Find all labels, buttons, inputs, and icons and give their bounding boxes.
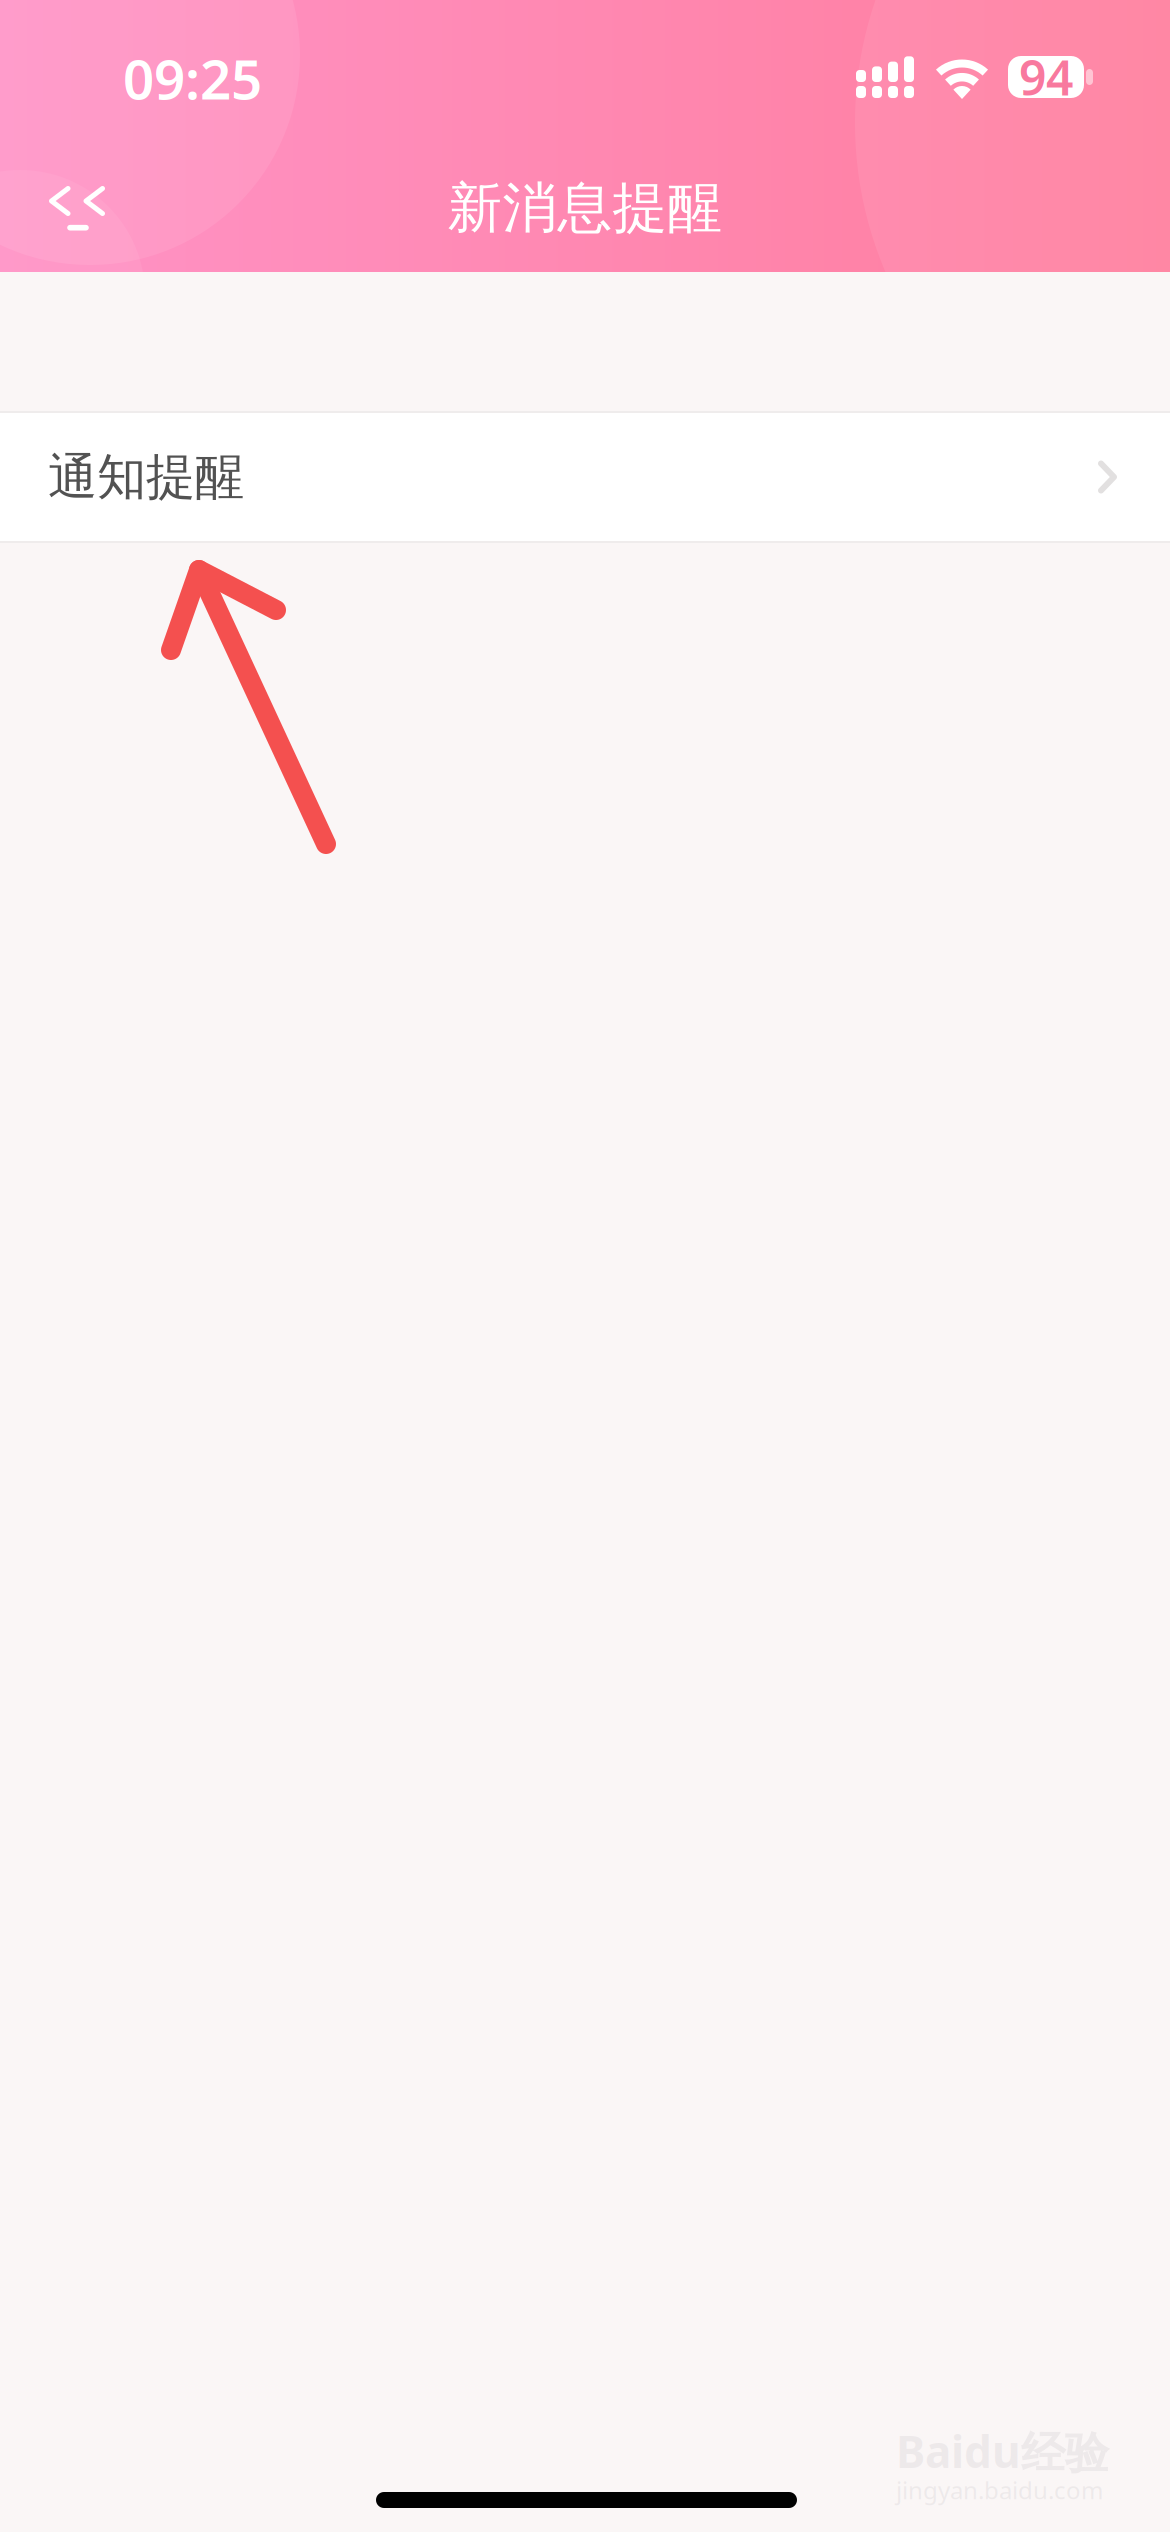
staticText: 09:25 [123,42,262,115]
staticText: Baidu经验 [896,2422,1109,2480]
staticText: jingyan.baidu.com [896,2474,1103,2506]
staticText: 新消息提醒 [447,174,722,241]
button[interactable]: 通知提醒 [0,411,1170,543]
button[interactable]: Back [0,128,141,251]
staticText: 94 [1019,45,1073,109]
staticText: 通知提醒 [48,447,244,507]
